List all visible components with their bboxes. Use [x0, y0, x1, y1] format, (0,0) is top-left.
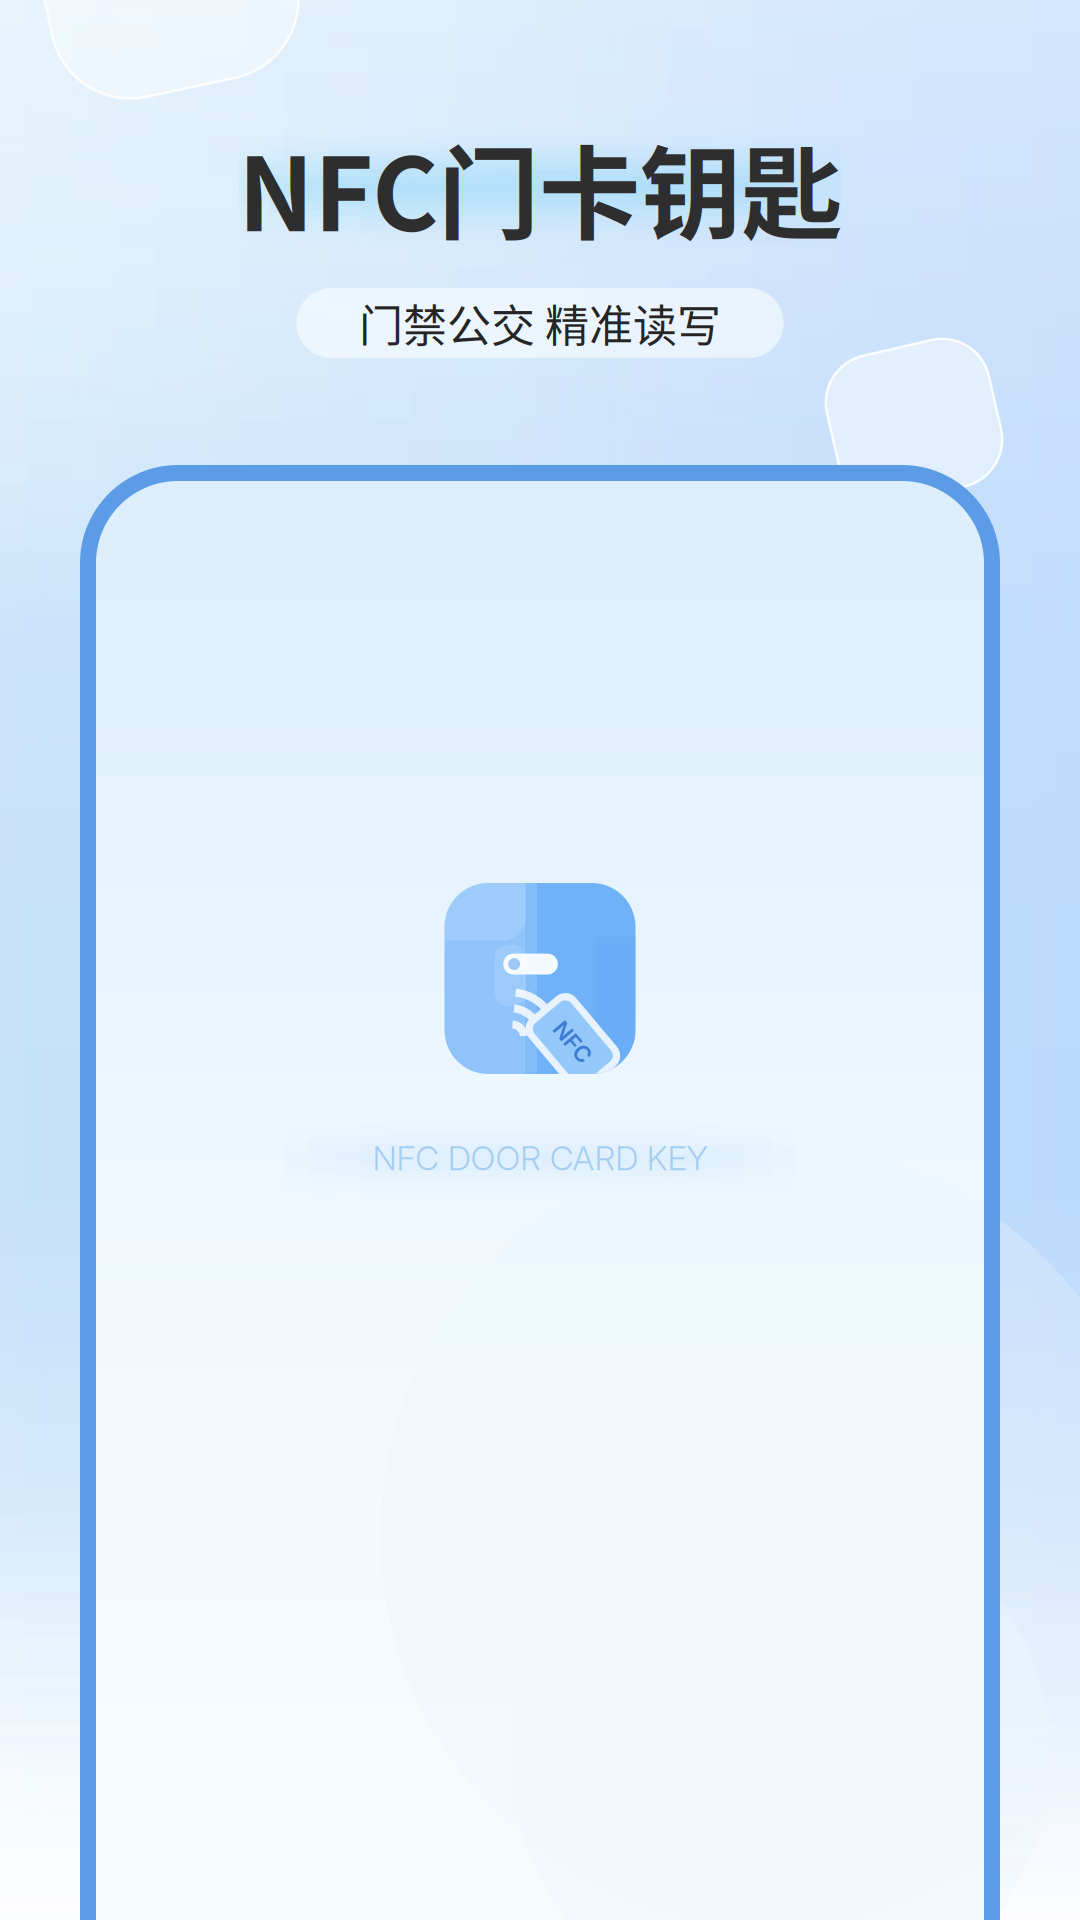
staticText: 门禁公交 精准读写 — [359, 291, 721, 355]
staticText: NFC — [549, 1028, 596, 1056]
staticText: NFC门卡钥匙 — [238, 114, 842, 260]
staticText: NFC DOOR CARD KEY — [373, 1138, 707, 1178]
